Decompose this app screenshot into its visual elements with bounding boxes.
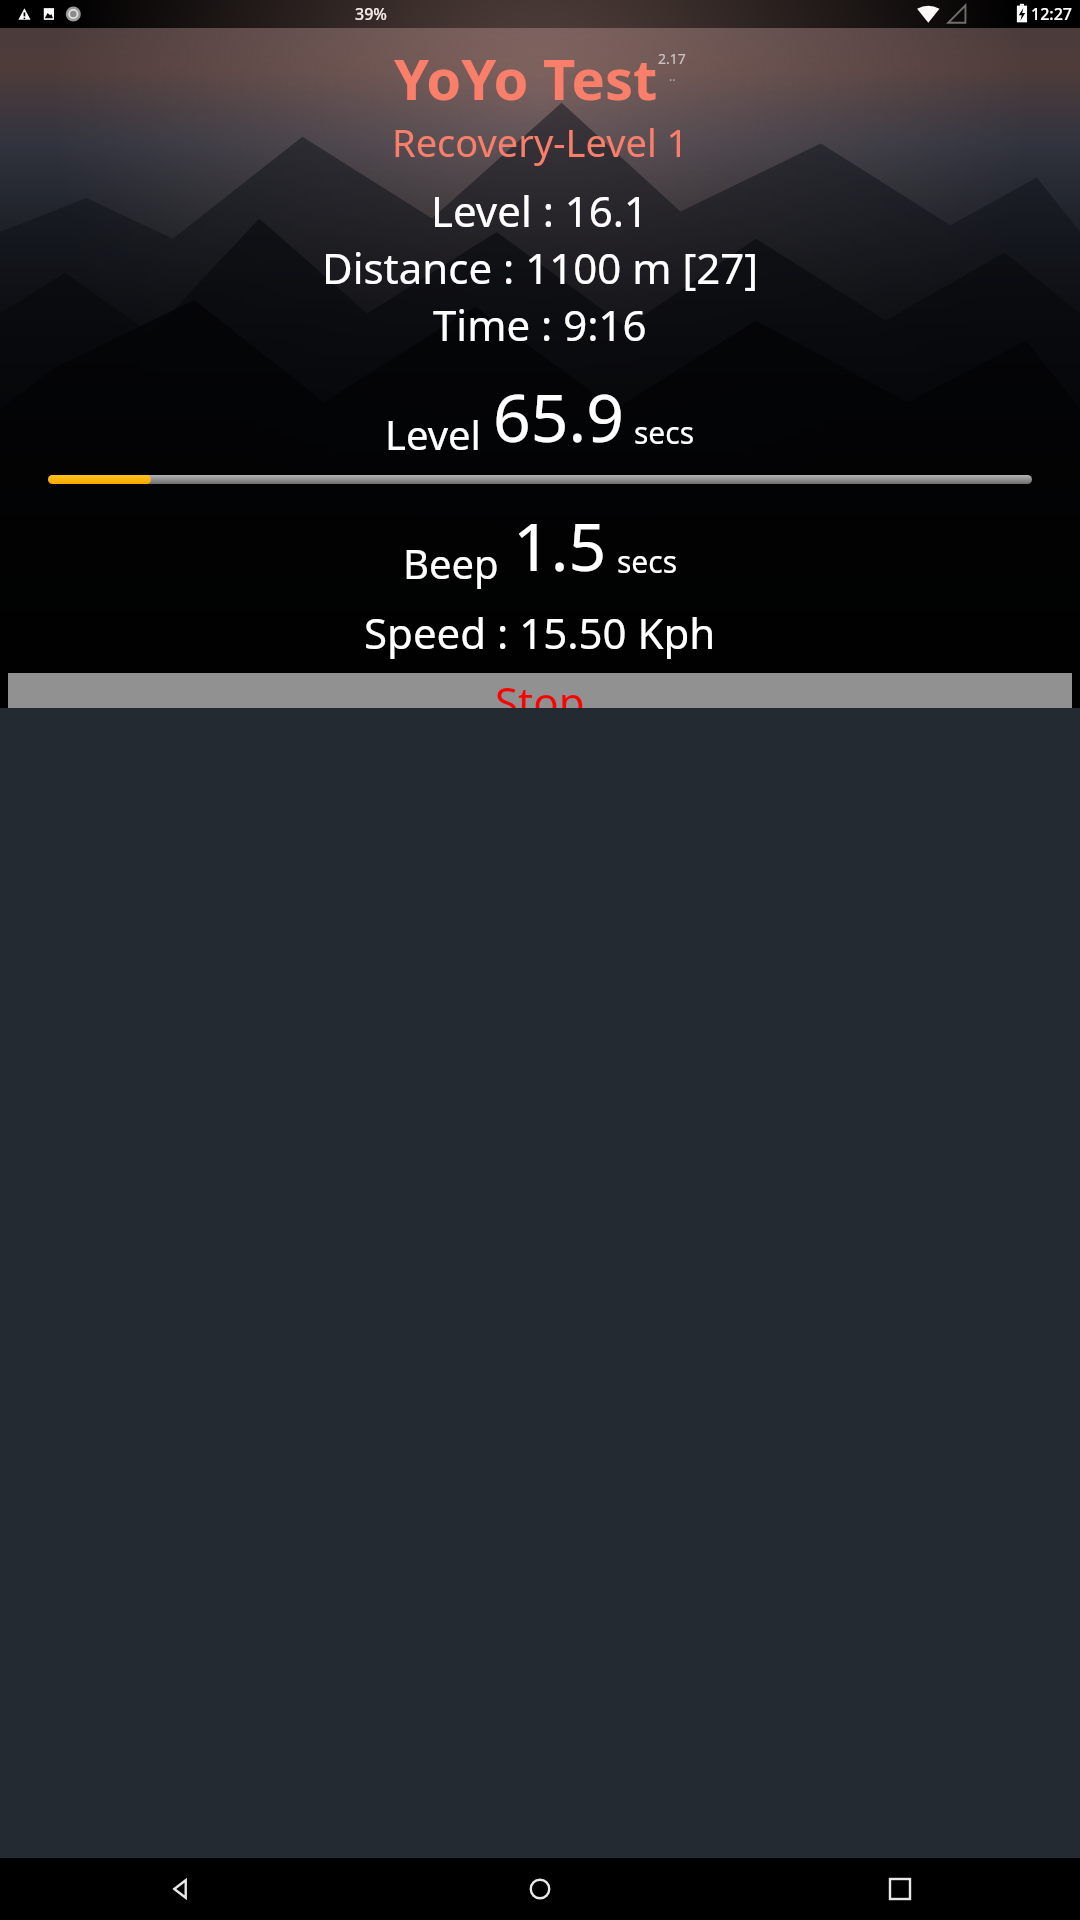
staticText: Stop bbox=[495, 673, 585, 708]
staticText: .. bbox=[669, 68, 676, 84]
staticText: YoYo Test bbox=[394, 40, 658, 116]
staticText: secs bbox=[634, 412, 695, 453]
button[interactable]: Home bbox=[360, 1858, 720, 1920]
staticText: Level bbox=[385, 407, 481, 461]
staticText: Speed : 15.50 Kph bbox=[364, 604, 716, 661]
staticText: 65.9 bbox=[493, 371, 624, 461]
button[interactable]: Back bbox=[0, 1858, 360, 1920]
button[interactable]: Recent apps bbox=[720, 1858, 1080, 1920]
staticText: Recovery-Level 1 bbox=[392, 116, 689, 168]
staticText: 12:27 bbox=[1031, 3, 1072, 25]
button[interactable]: Stop bbox=[8, 673, 1072, 708]
staticText: Beep bbox=[403, 536, 499, 590]
staticText: 39% bbox=[355, 3, 387, 25]
staticText: 2.17 bbox=[658, 49, 686, 68]
staticText: Distance : 1100 m [27] bbox=[322, 239, 759, 296]
staticText: Level : 16.1 bbox=[431, 182, 649, 239]
staticText: Time : 9:16 bbox=[433, 296, 647, 353]
staticText: secs bbox=[617, 541, 678, 582]
staticText: 1.5 bbox=[513, 500, 607, 590]
